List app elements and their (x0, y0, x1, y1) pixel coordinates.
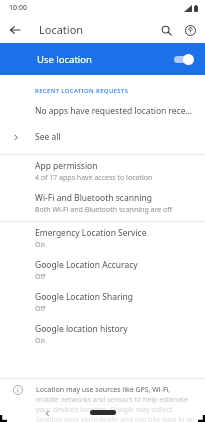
staticText: Location (39, 22, 84, 37)
button[interactable]: No apps have requested location recently (0, 100, 205, 122)
staticText: Emergency Location Service (35, 227, 147, 239)
staticText: Off (35, 304, 46, 314)
button[interactable]: Back (7, 22, 23, 38)
staticText: App permission (35, 160, 98, 172)
staticText: No apps have requested location recently (35, 105, 195, 117)
button[interactable]: Emergency Location Service (0, 224, 205, 253)
staticText: Google Location Accuracy (35, 259, 138, 271)
button[interactable]: Google Location Accuracy (0, 256, 205, 285)
staticText: Use location (37, 53, 92, 66)
staticText: RECENT LOCATION REQUESTS (35, 87, 129, 95)
staticText: 10:00 (9, 3, 27, 13)
staticText: On (35, 336, 45, 346)
staticText: location data periodically and use this … (36, 415, 195, 422)
button[interactable]: Back (44, 410, 51, 417)
staticText: Off (35, 272, 46, 282)
staticText: Both Wi-Fi and Bluetooth scanning are of… (35, 205, 173, 215)
button[interactable]: Search (157, 21, 175, 39)
button[interactable]: Wi-Fi and Bluetooth scanning (0, 189, 205, 218)
staticText: On (35, 240, 45, 250)
staticText: Google Location Sharing (35, 291, 134, 303)
button[interactable]: Home (90, 410, 116, 415)
staticText: Google location history (35, 323, 128, 335)
button[interactable]: Help (181, 21, 199, 39)
staticText: Location may use sources like GPS, Wi-Fi… (36, 385, 171, 395)
staticText: See all (35, 131, 61, 143)
button[interactable]: Use location (0, 43, 205, 75)
staticText: mobile networks and sensors to help esti… (36, 395, 188, 405)
staticText: your device's location. Google may colle… (36, 405, 173, 415)
button[interactable]: See all (0, 124, 205, 150)
button[interactable]: App permission (0, 157, 205, 186)
button[interactable]: Google Location Sharing (0, 288, 205, 317)
button[interactable]: Google location history (0, 320, 205, 349)
staticText: 4 of 17 apps have access to location (35, 173, 153, 183)
staticText: Wi-Fi and Bluetooth scanning (35, 192, 152, 204)
